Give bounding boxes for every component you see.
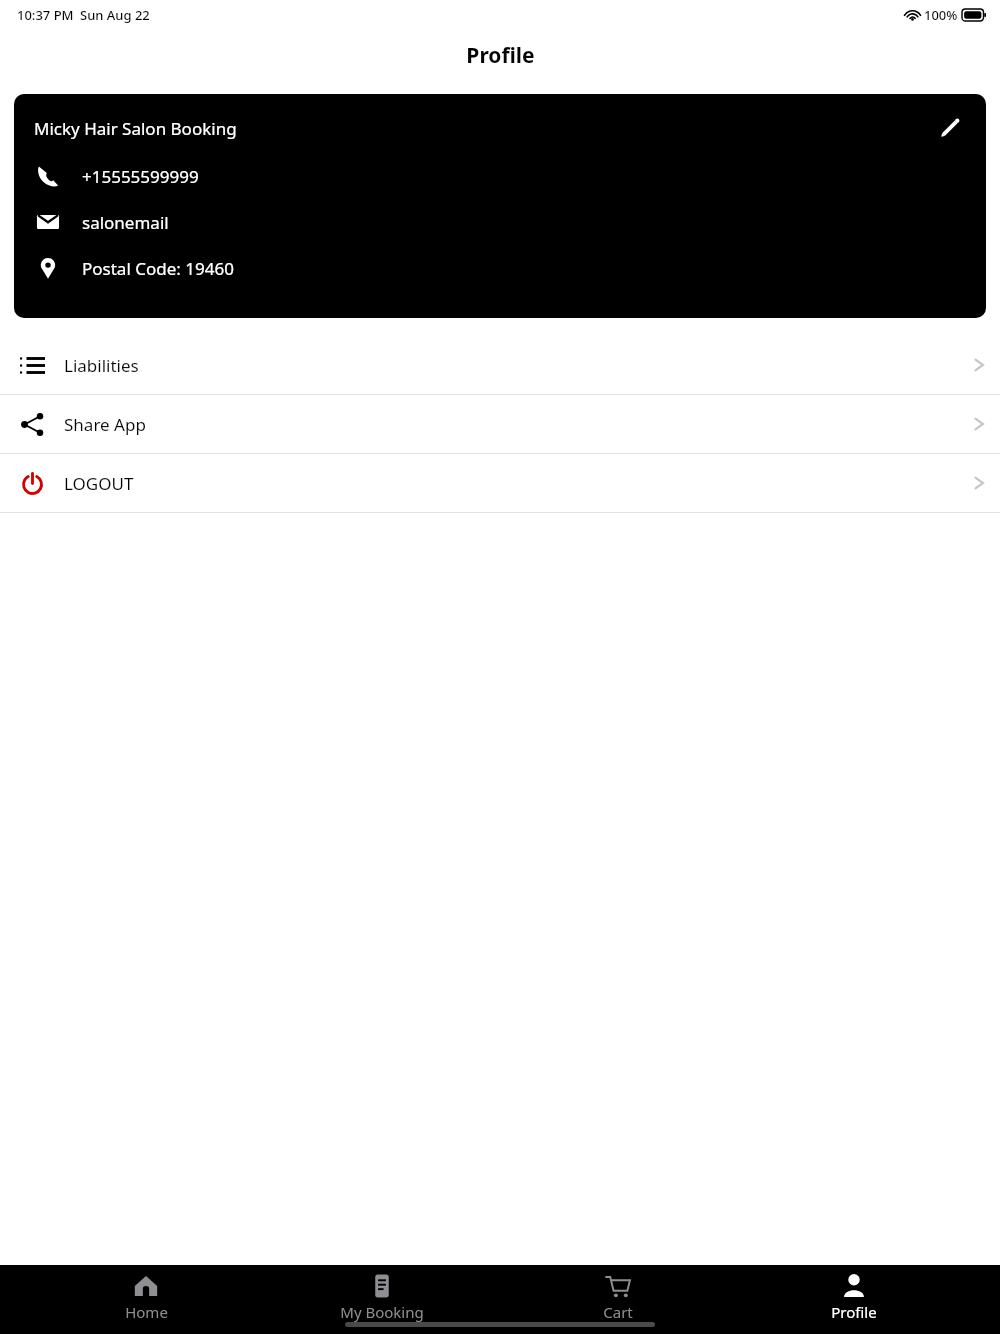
button[interactable]: Liabilities [0, 336, 1000, 394]
staticText: Postal Code: 19460 [82, 257, 234, 280]
staticText: +15555599999 [82, 165, 199, 188]
button[interactable]: Cart [528, 1273, 708, 1322]
staticText: Profile [466, 41, 535, 70]
button[interactable]: Profile [764, 1273, 944, 1322]
button[interactable]: LOGOUT [0, 454, 1000, 512]
staticText: LOGOUT [64, 472, 134, 495]
staticText: Micky Hair Salon Booking [34, 117, 237, 140]
button[interactable]: Postal Code: 19460 [14, 256, 986, 280]
staticText: salonemail [82, 211, 169, 234]
button[interactable]: My Booking [292, 1273, 472, 1322]
staticText: My Booking [340, 1302, 424, 1322]
staticText: 10:37 PM [17, 6, 74, 24]
button[interactable]: salonemail [14, 210, 986, 234]
staticText: Cart [603, 1302, 633, 1322]
staticText: Sun Aug 22 [80, 6, 150, 24]
button[interactable]: Edit profile [926, 104, 974, 152]
button[interactable]: Home [56, 1273, 236, 1322]
staticText: Liabilities [64, 354, 139, 377]
button[interactable]: Share App [0, 395, 1000, 453]
staticText: 100% [924, 6, 958, 24]
button[interactable]: +15555599999 [14, 164, 986, 188]
staticText: Profile [831, 1302, 877, 1322]
staticText: Share App [64, 413, 146, 436]
staticText: Home [125, 1302, 168, 1322]
